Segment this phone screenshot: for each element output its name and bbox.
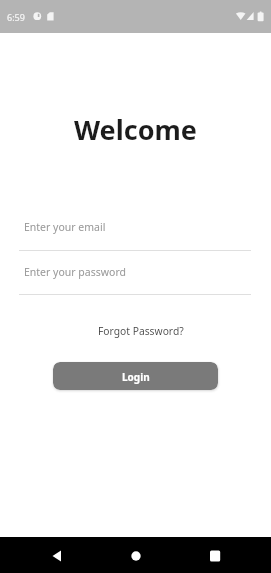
- staticText: 6:59: [7, 11, 25, 23]
- button[interactable]: [114, 537, 158, 573]
- button[interactable]: [193, 537, 237, 573]
- staticText: Enter your email: [24, 220, 106, 234]
- staticText: Welcome: [74, 111, 197, 148]
- button[interactable]: Login: [53, 362, 218, 390]
- button[interactable]: Enter your email: [19, 213, 251, 251]
- staticText: Forgot Password?: [98, 324, 184, 338]
- button[interactable]: Forgot Password?: [98, 320, 184, 334]
- button[interactable]: [35, 537, 79, 573]
- staticText: Login: [122, 370, 150, 384]
- staticText: Enter your password: [24, 265, 126, 279]
- button[interactable]: Enter your password: [19, 257, 251, 295]
